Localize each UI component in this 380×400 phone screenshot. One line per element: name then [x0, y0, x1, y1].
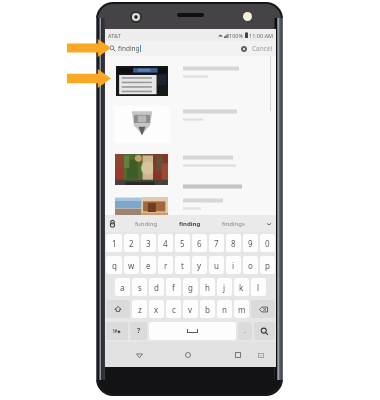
button[interactable]: Back	[131, 347, 147, 363]
button[interactable]	[183, 184, 242, 189]
button[interactable]: w	[124, 256, 139, 274]
staticText: g	[188, 282, 193, 293]
button[interactable]: Symbols	[106, 322, 128, 340]
button[interactable]: x	[149, 300, 164, 318]
button[interactable]	[115, 197, 168, 217]
button[interactable]: v	[183, 300, 198, 318]
button[interactable]: c	[166, 300, 181, 318]
button[interactable]: 8	[226, 234, 241, 252]
button[interactable]: m	[234, 300, 249, 318]
staticText: t	[181, 260, 184, 271]
button[interactable]: n	[217, 300, 232, 318]
staticText: finding	[118, 44, 140, 53]
staticText: i	[232, 260, 235, 271]
button[interactable]: j	[217, 278, 232, 296]
button[interactable]: 0	[260, 234, 275, 252]
button[interactable]: q	[106, 256, 122, 274]
button[interactable]: 1	[106, 234, 122, 252]
staticText: 4	[163, 238, 168, 249]
staticText: s	[138, 282, 142, 293]
button[interactable]: t	[175, 256, 190, 274]
staticText: ?	[137, 326, 141, 336]
button[interactable]: h	[200, 278, 215, 296]
button[interactable]: Cancel	[252, 44, 273, 53]
button[interactable]: p	[260, 256, 275, 274]
button[interactable]	[116, 66, 168, 96]
staticText: l	[257, 282, 260, 293]
staticText: u	[214, 260, 219, 271]
button[interactable]: 2	[124, 234, 139, 252]
staticText: y	[197, 260, 202, 271]
staticText: 1	[112, 238, 117, 249]
button[interactable]: b	[200, 300, 215, 318]
button[interactable]: Home	[180, 347, 196, 363]
staticText: f	[172, 282, 175, 293]
staticText: j	[223, 282, 226, 293]
button[interactable]: z	[132, 300, 147, 318]
staticText: 100%	[229, 32, 244, 39]
button[interactable]: l	[251, 278, 266, 296]
staticText: p	[265, 260, 270, 271]
staticText: findings	[222, 220, 245, 228]
button[interactable]: Space	[149, 322, 236, 340]
button[interactable]: findings	[222, 220, 245, 228]
button[interactable]: g	[183, 278, 198, 296]
button[interactable]: Backspace	[251, 300, 275, 318]
button[interactable]: Hide keyboard	[253, 347, 269, 363]
button[interactable]: Keyboard settings	[108, 219, 117, 228]
staticText: finding	[179, 220, 201, 228]
staticText: 11:00 AM	[249, 32, 273, 39]
button[interactable]: 3	[141, 234, 156, 252]
staticText: c	[172, 304, 176, 315]
staticText: 8	[231, 238, 236, 249]
button[interactable]: funding	[135, 220, 158, 228]
button[interactable]: 7	[209, 234, 224, 252]
staticText: b	[205, 304, 210, 315]
button[interactable]: o	[243, 256, 258, 274]
staticText: v	[188, 304, 193, 315]
button[interactable]: u	[209, 256, 224, 274]
button[interactable]	[114, 106, 170, 143]
button[interactable]: 5	[175, 234, 190, 252]
button[interactable]: s	[132, 278, 147, 296]
button[interactable]: Recent apps	[230, 347, 246, 363]
button[interactable]: More suggestions	[264, 219, 273, 228]
staticText: .	[244, 326, 246, 336]
button[interactable]: r	[158, 256, 173, 274]
staticText: z	[138, 304, 142, 315]
button[interactable]: f	[166, 278, 181, 296]
staticText: 9	[248, 238, 253, 249]
button[interactable]: 6	[192, 234, 207, 252]
button[interactable]: 4	[158, 234, 173, 252]
staticText: funding	[135, 220, 158, 228]
button[interactable]: 9	[243, 234, 258, 252]
staticText: m	[238, 304, 246, 315]
button[interactable]: d	[149, 278, 164, 296]
staticText: Cancel	[252, 44, 273, 53]
button[interactable]: Shift	[106, 300, 130, 318]
staticText: r	[164, 260, 168, 271]
button[interactable]: y	[192, 256, 207, 274]
staticText: k	[239, 282, 244, 293]
staticText: 7	[214, 238, 219, 249]
button[interactable]	[115, 154, 168, 185]
button[interactable]: k	[234, 278, 249, 296]
button[interactable]: Emoji	[130, 322, 147, 340]
staticText: 6	[197, 238, 202, 249]
button[interactable]: i	[226, 256, 241, 274]
button[interactable]: finding	[179, 220, 201, 228]
staticText: 3	[146, 238, 151, 249]
staticText: 2	[129, 238, 134, 249]
staticText: e	[146, 260, 151, 271]
button[interactable]: e	[141, 256, 156, 274]
staticText: n	[222, 304, 227, 315]
staticText: 0	[265, 238, 270, 249]
button[interactable]: a	[115, 278, 130, 296]
staticText: AT&T	[108, 32, 121, 39]
button[interactable]: Search	[254, 322, 275, 340]
staticText: 5	[180, 238, 185, 249]
button[interactable]: Period	[238, 322, 252, 340]
staticText: h	[205, 282, 210, 293]
staticText: o	[248, 260, 253, 271]
staticText: !#◆	[113, 328, 121, 334]
